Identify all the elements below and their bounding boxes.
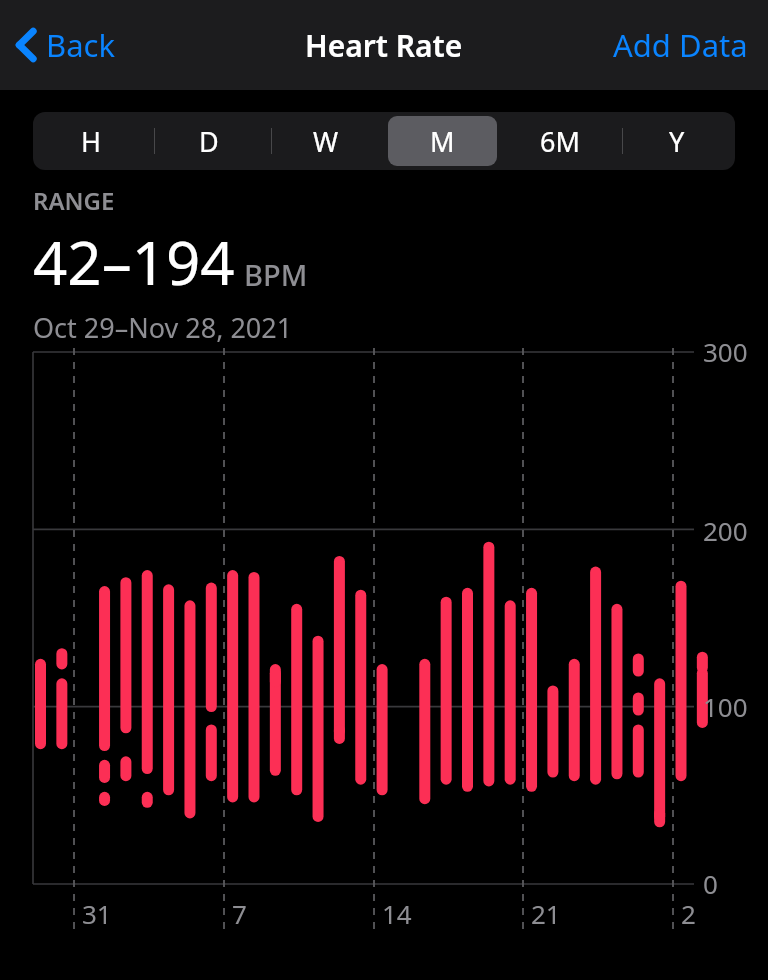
staticText: 6M <box>540 123 580 160</box>
staticText: H <box>81 123 102 160</box>
staticText: 42–194 <box>33 221 235 303</box>
button[interactable]: Back <box>14 24 115 66</box>
staticText: D <box>199 123 219 160</box>
staticText: 2 <box>681 896 696 931</box>
staticText: BPM <box>244 255 308 294</box>
staticText: Y <box>669 123 685 160</box>
staticText: 21 <box>531 896 561 931</box>
button[interactable]: H <box>37 116 146 166</box>
button[interactable]: W <box>271 116 380 166</box>
staticText: W <box>313 123 339 160</box>
button[interactable]: 6M <box>505 116 614 166</box>
staticText: Back <box>46 24 115 66</box>
staticText: 7 <box>232 896 247 931</box>
button[interactable]: D <box>154 116 263 166</box>
staticText: 300 <box>703 334 748 369</box>
staticText: 100 <box>703 689 748 724</box>
other: Back <box>14 26 38 64</box>
staticText: 0 <box>703 866 718 901</box>
staticText: RANGE <box>33 184 115 217</box>
button[interactable]: Add Data <box>613 24 748 66</box>
staticText: M <box>430 123 455 160</box>
staticText: 31 <box>82 896 112 931</box>
button[interactable]: M <box>388 116 497 166</box>
staticText: Heart Rate <box>305 25 463 66</box>
button[interactable]: Y <box>622 116 731 166</box>
staticText: Oct 29–Nov 28, 2021 <box>33 309 293 346</box>
staticText: 14 <box>382 896 412 931</box>
staticText: 200 <box>703 513 748 548</box>
